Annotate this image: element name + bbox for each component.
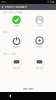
staticText: Locate [36, 46, 42, 48]
button[interactable]: Locate [31, 35, 48, 48]
staticText: Remote [13, 67, 20, 70]
staticText: Buttons [36, 67, 43, 70]
staticText: DEVICE SETTINGS [2, 53, 15, 55]
button[interactable]: Restart [8, 35, 25, 48]
button[interactable]: Learn More [0, 86, 56, 92]
staticText: Locked [36, 25, 42, 27]
button[interactable]: Buttons [31, 57, 48, 70]
staticText: Restart [13, 46, 20, 48]
staticText: LIGHTS AND ELECTRONICS [2, 12, 22, 14]
button[interactable]: Locked [31, 16, 48, 27]
staticText: TOOLS [2, 31, 7, 34]
staticText: 12:30 [47, 1, 52, 3]
button[interactable]: Remote Commander [0, 4, 56, 10]
staticText: Remote Commander [5, 5, 27, 8]
button[interactable]: Remote [8, 57, 25, 70]
staticText: Learn More [22, 88, 33, 90]
button[interactable]: Power [8, 16, 25, 27]
staticText: Power [14, 25, 19, 27]
